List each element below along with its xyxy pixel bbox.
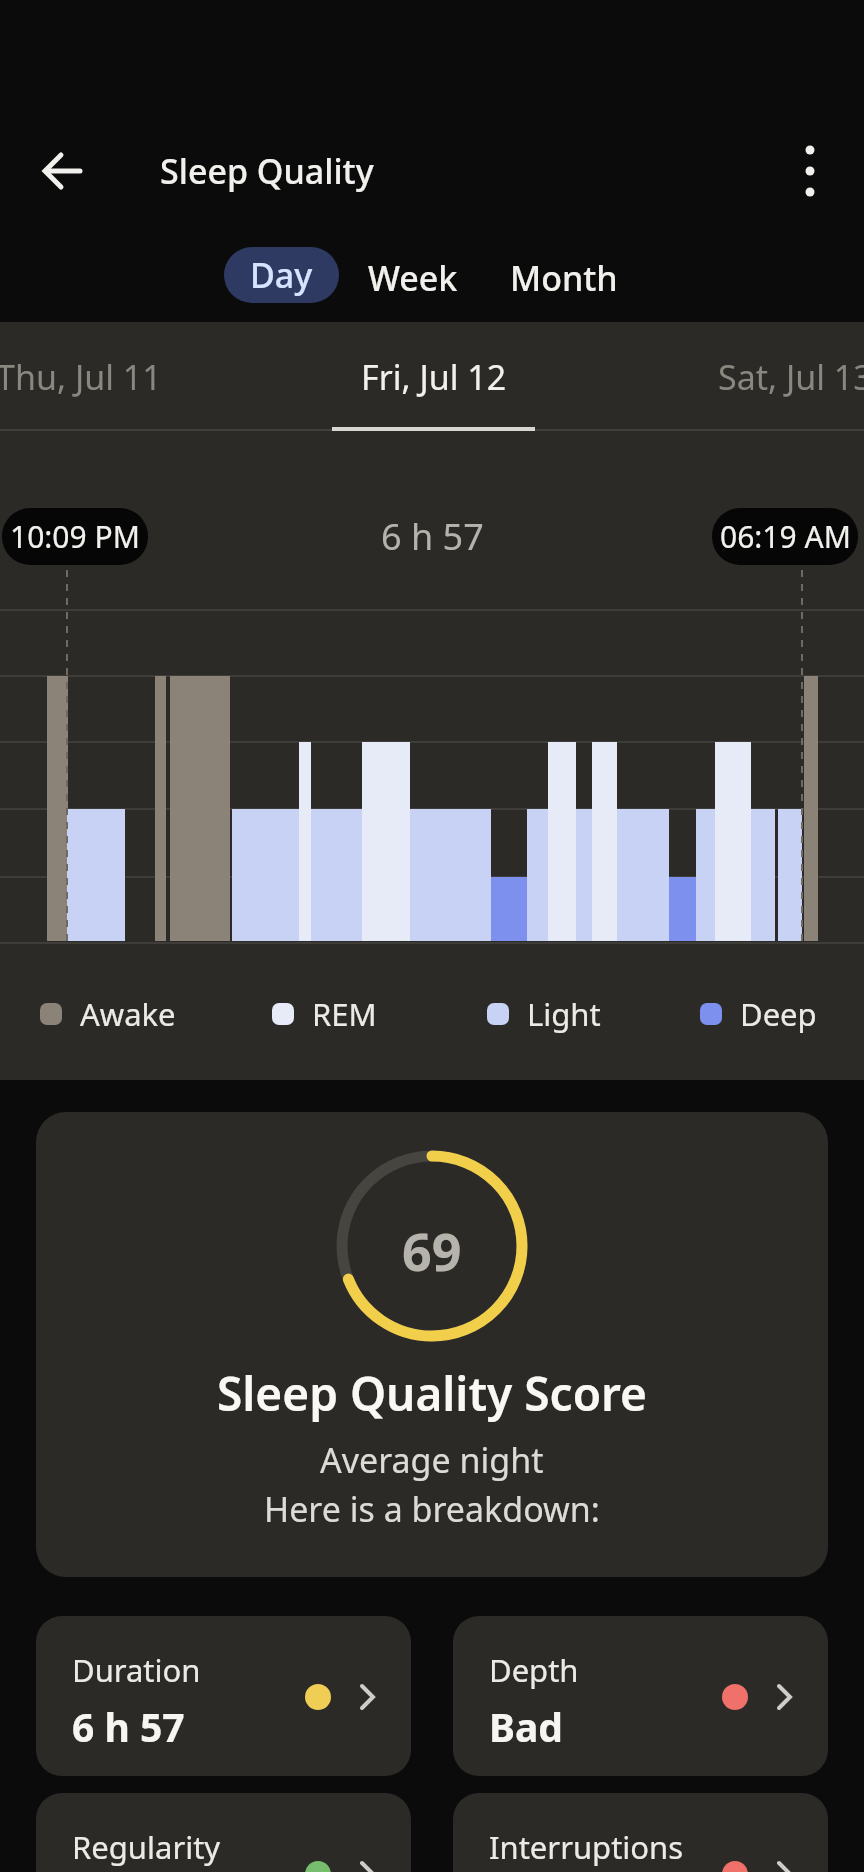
button[interactable] [36,1616,411,1776]
button[interactable] [453,1616,828,1776]
staticText: Sleep Quality [160,148,374,194]
staticText: Deep [740,993,817,1035]
staticText: Fri, Jul 12 [361,354,507,400]
staticText: 6 h 57 [72,1700,185,1748]
button[interactable]: Thu, Jul 11 [0,350,186,404]
staticText: Awake [80,993,176,1035]
button[interactable]: Fri, Jul 12 [332,350,535,404]
staticText: Thu, Jul 11 [0,354,162,400]
button[interactable] [36,1793,411,1872]
staticText: 10:09 PM [10,516,140,557]
button[interactable]: Month [496,250,631,306]
staticText: Sat, Jul 13 [718,354,864,400]
staticText: Week [368,255,458,301]
button[interactable] [453,1793,828,1872]
staticText: Interruptions [489,1826,684,1868]
button[interactable]: Sat, Jul 13 [700,350,864,404]
button[interactable] [780,139,840,203]
staticText: Sleep Quality Score [217,1362,647,1424]
staticText: Duration [72,1649,201,1691]
button[interactable] [36,1112,828,1577]
staticText: Average night [320,1437,544,1483]
staticText: 06:19 AM [720,516,851,557]
staticText: Month [510,255,618,301]
staticText: REM [312,993,377,1035]
button[interactable]: Day [224,247,339,303]
staticText: Day [250,252,313,298]
button[interactable] [30,139,94,203]
staticText: 6 h 57 [381,512,484,561]
staticText: Depth [489,1649,579,1691]
staticText: Light [527,993,601,1035]
staticText: Bad [489,1700,563,1748]
staticText: Regularity [72,1826,221,1868]
staticText: Here is a breakdown: [264,1486,600,1532]
button[interactable]: Week [355,250,470,306]
staticText: 69 [402,1215,462,1281]
